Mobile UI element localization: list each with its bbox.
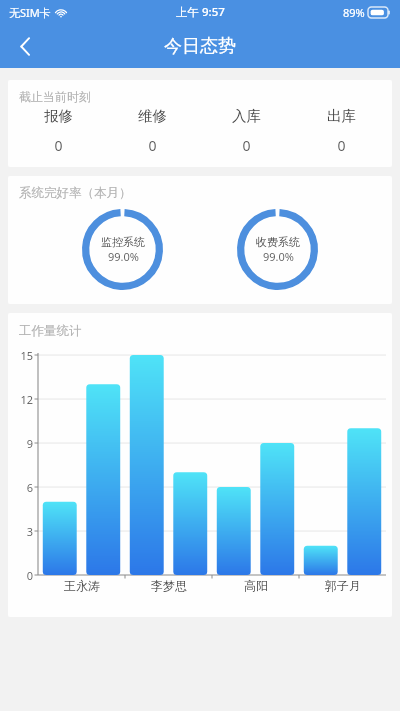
- staticText: 维修: [138, 107, 167, 125]
- staticText: 工作量统计: [19, 323, 82, 339]
- staticText: 高阳: [244, 578, 268, 593]
- staticText: 无SIM卡: [9, 5, 51, 20]
- button[interactable]: 出库: [294, 107, 389, 155]
- staticText: 9: [26, 436, 33, 450]
- staticText: 监控系统: [101, 235, 145, 249]
- staticText: 0: [337, 136, 346, 155]
- staticText: 截止当前时刻: [19, 89, 91, 104]
- staticText: 0: [242, 136, 251, 155]
- staticText: 出库: [327, 107, 356, 125]
- staticText: 报修: [44, 107, 73, 125]
- staticText: 12: [20, 392, 33, 406]
- staticText: 上午 9:57: [176, 4, 225, 20]
- staticText: 99.0%: [108, 249, 139, 264]
- staticText: 系统完好率（本月）: [19, 185, 132, 201]
- staticText: 3: [26, 524, 33, 538]
- button[interactable]: 报修: [11, 107, 105, 155]
- staticText: 今日态势: [164, 35, 236, 58]
- staticText: 6: [26, 480, 33, 494]
- staticText: 99.0%: [263, 249, 294, 264]
- staticText: 0: [148, 136, 157, 155]
- staticText: 15: [20, 348, 33, 362]
- staticText: 王永涛: [64, 578, 100, 593]
- staticText: 89%: [343, 5, 365, 20]
- button[interactable]: Back: [5, 26, 45, 66]
- staticText: 0: [26, 568, 33, 582]
- button[interactable]: 收费系统: [236, 208, 319, 291]
- staticText: 收费系统: [256, 235, 300, 249]
- button[interactable]: 维修: [105, 107, 199, 155]
- button[interactable]: 入库: [199, 107, 294, 155]
- staticText: 郭子月: [325, 578, 361, 593]
- staticText: 入库: [232, 107, 261, 125]
- staticText: 0: [54, 136, 63, 155]
- button[interactable]: 监控系统: [81, 208, 164, 291]
- staticText: 李梦思: [151, 578, 187, 593]
